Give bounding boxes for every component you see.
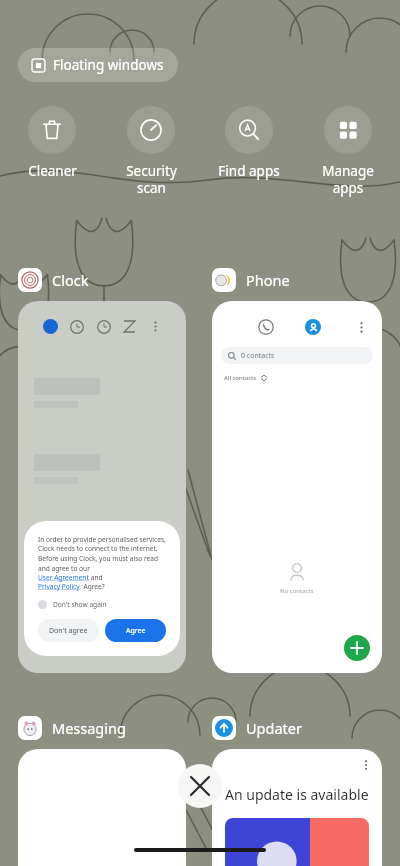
staticText: Agree xyxy=(126,626,146,636)
button[interactable]: Close xyxy=(178,764,222,808)
staticText: Updater xyxy=(246,718,302,738)
button[interactable]: Agree xyxy=(105,619,166,642)
button[interactable]: Cleaner xyxy=(6,104,98,182)
staticText: Don't show again xyxy=(53,600,107,609)
staticText: and xyxy=(89,573,105,582)
staticText: Don't agree xyxy=(49,626,88,636)
staticText: Clock xyxy=(52,270,89,290)
button[interactable]: 0 contacts xyxy=(212,301,382,673)
button[interactable]: An update is available xyxy=(212,749,382,866)
button[interactable]: Messaging xyxy=(18,716,126,740)
button[interactable]: Security scan xyxy=(105,104,197,199)
staticText: Phone xyxy=(246,270,290,290)
staticText: . Agree? xyxy=(80,582,105,591)
staticText: An update is available xyxy=(225,785,369,804)
staticText: Manage apps xyxy=(322,162,374,197)
button[interactable]: In order to provide personalised service… xyxy=(18,301,186,673)
button[interactable]: Don't show again xyxy=(38,600,107,609)
button[interactable]: Find apps xyxy=(203,104,295,182)
button[interactable]: Floating windows xyxy=(18,48,178,82)
staticText: Cleaner xyxy=(28,162,77,180)
staticText: Messaging xyxy=(52,718,126,738)
staticText: User Agreement xyxy=(38,573,89,582)
button[interactable]: Clock xyxy=(18,268,89,292)
button[interactable]: Phone xyxy=(212,268,290,292)
button[interactable]: Add contact xyxy=(344,635,370,661)
button[interactable]: Manage apps xyxy=(302,104,394,199)
staticText: Privacy Policy xyxy=(38,582,80,591)
staticText: All contacts xyxy=(224,374,257,382)
staticText: Find apps xyxy=(218,162,280,180)
staticText: No contacts xyxy=(280,587,314,595)
button[interactable]: Updater xyxy=(212,716,302,740)
staticText: In order to provide personalised service… xyxy=(38,535,166,573)
button[interactable]: 0 contacts xyxy=(221,347,373,364)
staticText: 0 contacts xyxy=(241,351,275,361)
staticText: Security scan xyxy=(126,162,177,197)
staticText: Floating windows xyxy=(53,56,164,74)
button[interactable] xyxy=(18,749,186,866)
button[interactable]: Don't agree xyxy=(38,619,99,642)
